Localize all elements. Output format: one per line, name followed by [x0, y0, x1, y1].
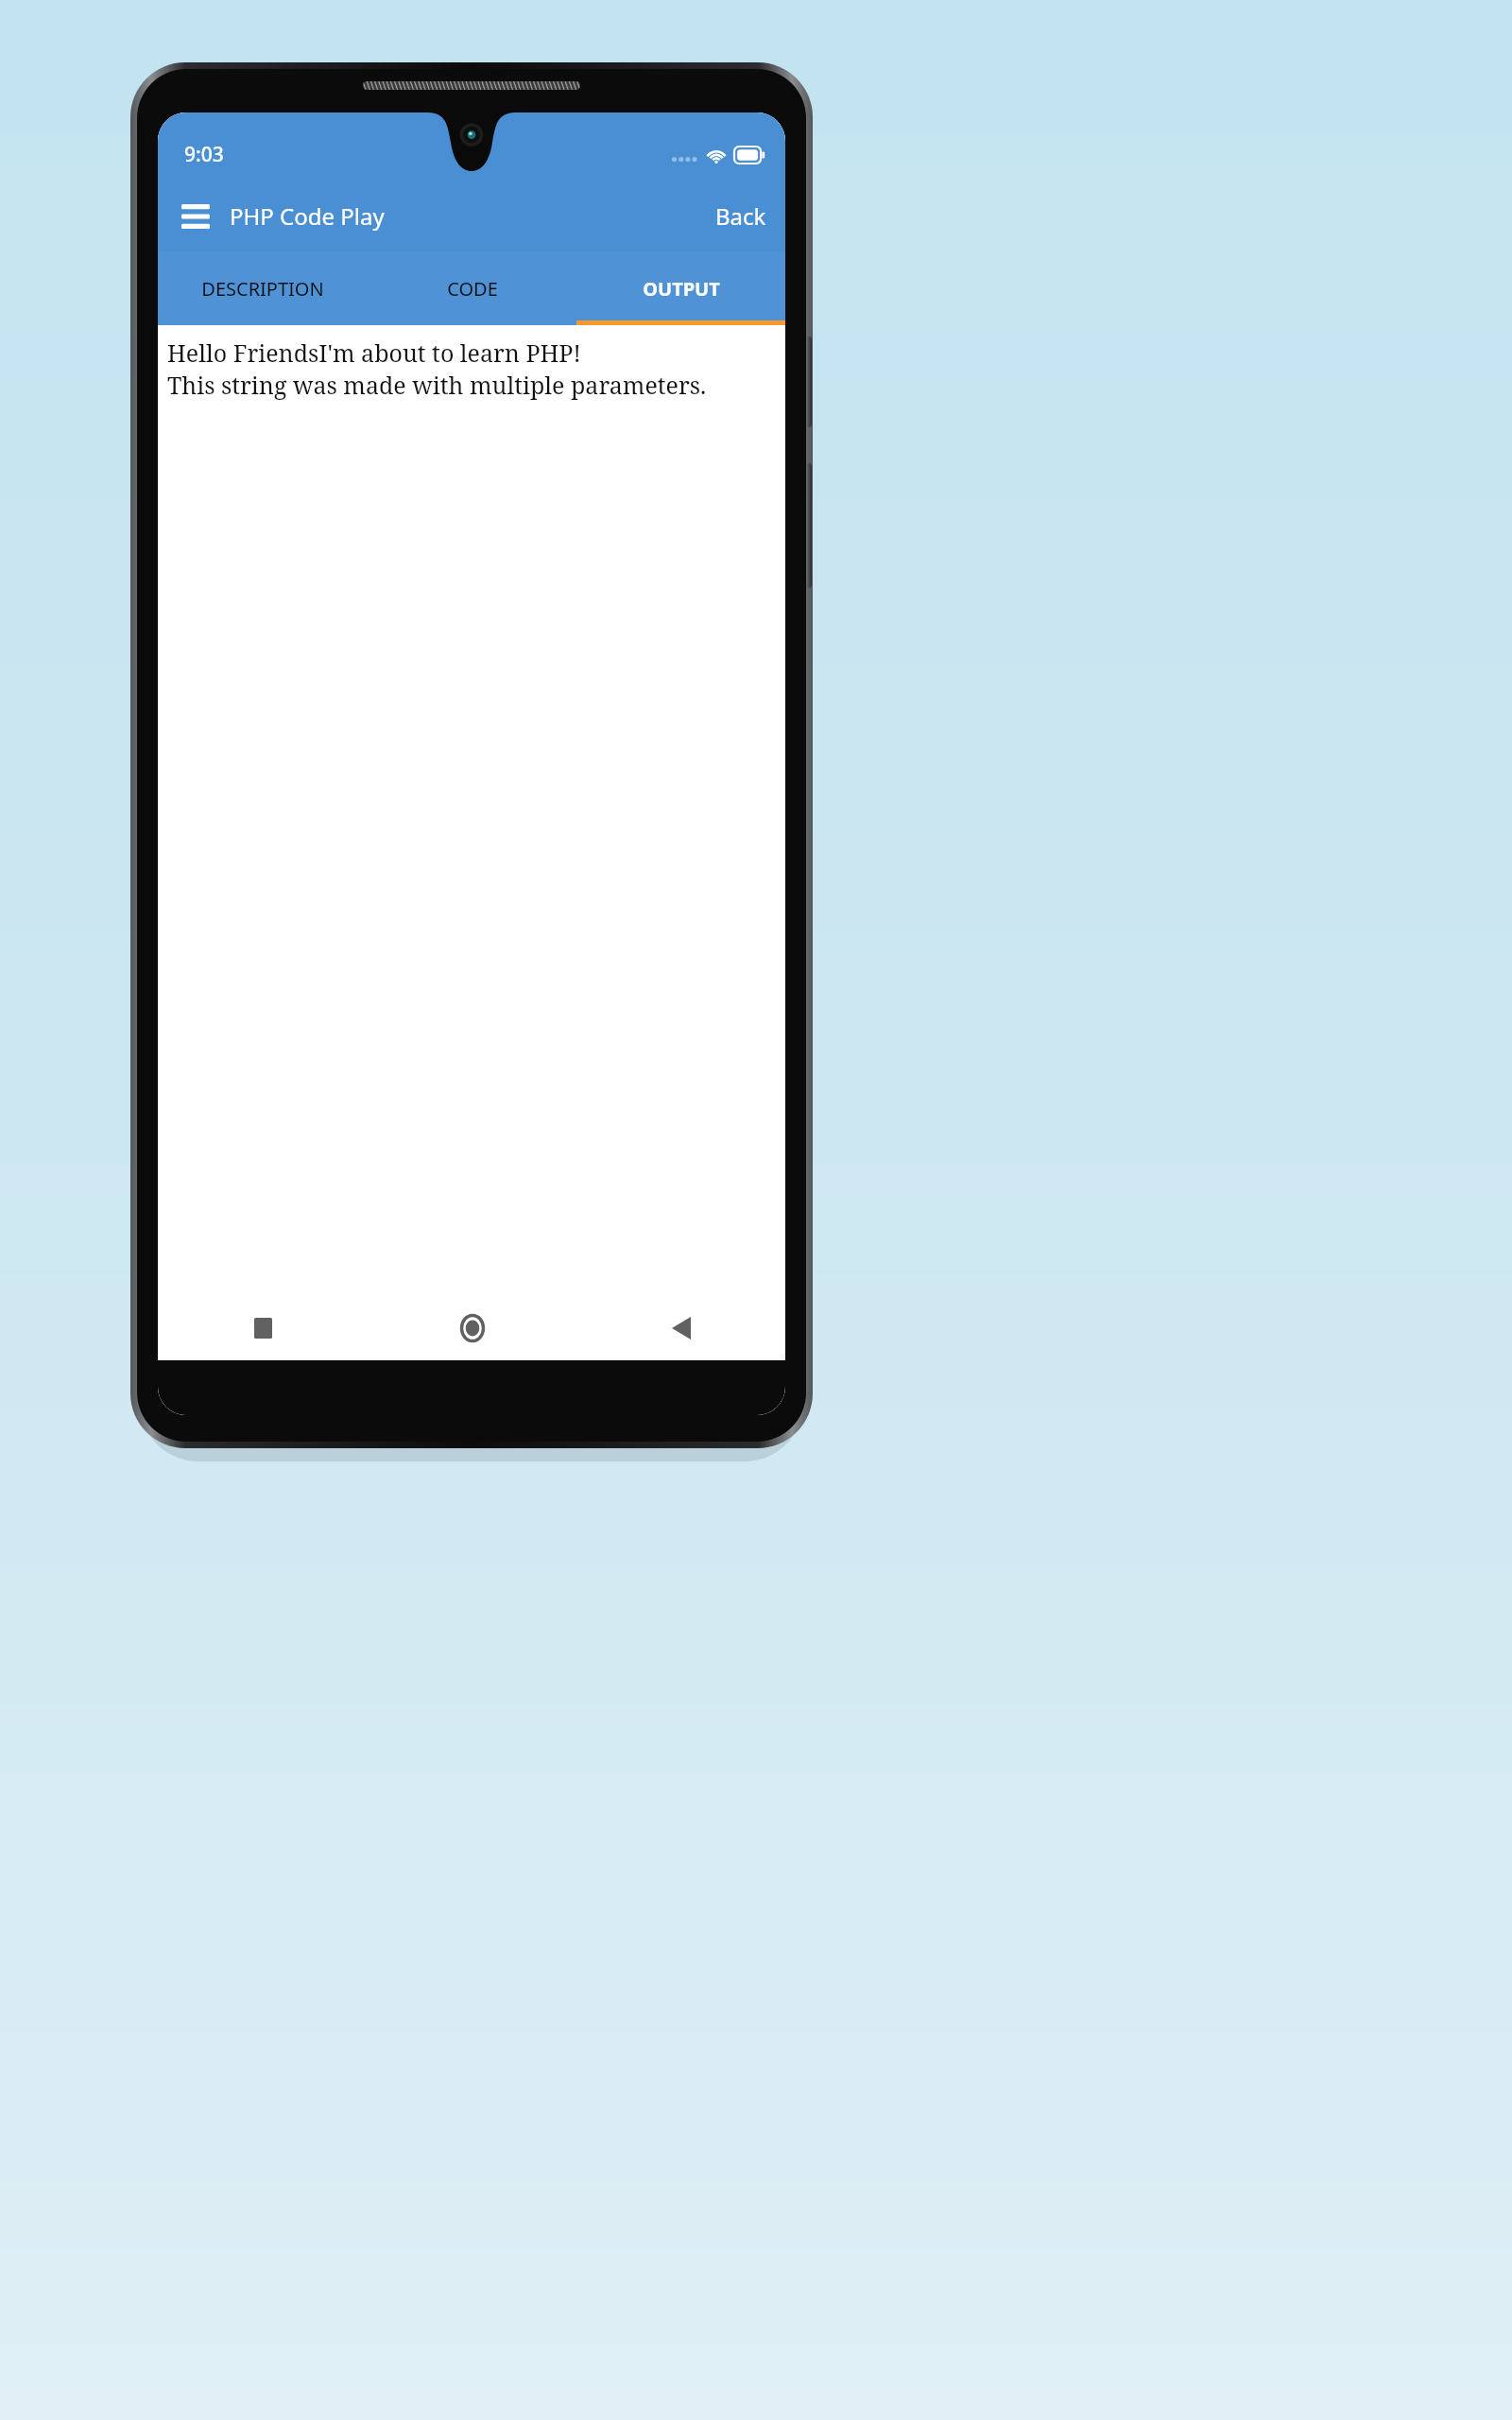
- staticText: Hello FriendsI'm about to learn PHP!: [167, 337, 581, 369]
- button[interactable]: OUTPUT: [576, 251, 785, 325]
- staticText: Back: [715, 200, 766, 232]
- button[interactable]: Open navigation menu: [175, 196, 216, 237]
- button[interactable]: Back: [696, 191, 785, 241]
- button[interactable]: Back: [576, 1296, 785, 1360]
- staticText: DESCRIPTION: [201, 276, 324, 302]
- button[interactable]: Home: [368, 1296, 576, 1360]
- staticText: CODE: [447, 276, 498, 302]
- staticText: 9:03: [184, 141, 224, 168]
- button[interactable]: DESCRIPTION: [158, 251, 368, 325]
- staticText: This string was made with multiple param…: [167, 369, 707, 401]
- button[interactable]: Recent apps: [158, 1296, 368, 1360]
- staticText: PHP Code Play: [230, 200, 385, 232]
- button[interactable]: CODE: [368, 251, 576, 325]
- staticText: OUTPUT: [643, 276, 720, 302]
